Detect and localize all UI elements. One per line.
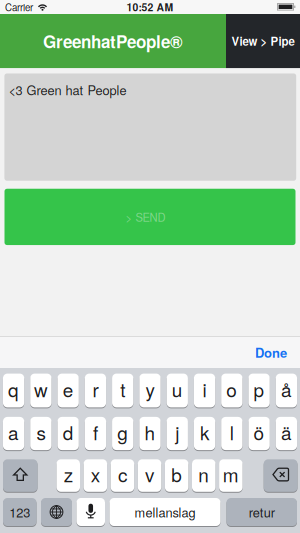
staticText: ö: [254, 418, 265, 445]
staticText: n: [198, 460, 209, 488]
staticText: e: [63, 375, 74, 402]
button[interactable]: c: [111, 459, 134, 492]
staticText: ä: [281, 418, 292, 445]
button[interactable]: <3 Green hat People: [4, 73, 296, 181]
button[interactable]: 123: [3, 498, 36, 526]
staticText: t: [120, 375, 125, 402]
staticText: j: [175, 418, 179, 445]
staticText: i: [203, 375, 207, 402]
button[interactable]: l: [221, 417, 242, 450]
staticText: h: [144, 418, 155, 445]
staticText: a: [8, 418, 19, 445]
staticText: q: [8, 375, 19, 402]
staticText: r: [92, 375, 98, 402]
button[interactable]: n: [192, 459, 215, 492]
staticText: v: [145, 460, 154, 488]
button[interactable]: o: [221, 374, 242, 407]
staticText: p: [254, 375, 265, 402]
staticText: View > Pipe: [231, 33, 294, 49]
button[interactable]: s: [30, 417, 51, 450]
staticText: l: [230, 418, 234, 445]
button[interactable]: y: [139, 374, 161, 407]
button[interactable]: j: [167, 417, 188, 450]
button[interactable]: retur: [226, 498, 297, 526]
staticText: d: [63, 418, 74, 445]
staticText: å: [281, 375, 292, 402]
staticText: x: [91, 460, 100, 488]
staticText: retur: [249, 503, 275, 521]
button[interactable]: [264, 459, 297, 492]
staticText: w: [34, 375, 48, 402]
button[interactable]: p: [248, 374, 270, 407]
button[interactable]: i: [194, 374, 215, 407]
button[interactable]: w: [30, 374, 51, 407]
staticText: <3 Green hat People: [8, 80, 126, 99]
button[interactable]: d: [57, 417, 79, 450]
button[interactable]: > SEND: [4, 189, 295, 245]
staticText: > SEND: [125, 209, 165, 225]
staticText: Done: [255, 343, 287, 362]
button[interactable]: Done: [255, 343, 287, 362]
staticText: o: [226, 375, 237, 402]
button[interactable]: u: [167, 374, 188, 407]
button[interactable]: m: [219, 459, 243, 492]
staticText: 123: [9, 503, 30, 521]
button[interactable]: [41, 498, 72, 526]
button[interactable]: b: [165, 459, 188, 492]
staticText: GreenhatPeople®: [43, 29, 183, 53]
staticText: f: [93, 418, 98, 445]
button[interactable]: å: [276, 374, 297, 407]
button[interactable]: ö: [248, 417, 270, 450]
staticText: g: [117, 418, 128, 445]
button[interactable]: f: [85, 417, 106, 450]
staticText: s: [36, 418, 45, 445]
button[interactable]: ä: [276, 417, 297, 450]
button[interactable]: k: [194, 417, 215, 450]
staticText: c: [118, 460, 127, 488]
staticText: z: [64, 460, 73, 488]
button[interactable]: g: [112, 417, 133, 450]
staticText: b: [171, 460, 182, 488]
button[interactable]: v: [138, 459, 161, 492]
staticText: m: [223, 460, 239, 488]
staticText: mellanslag: [134, 503, 195, 521]
button[interactable]: [3, 459, 37, 492]
button[interactable]: [76, 498, 105, 526]
button[interactable]: a: [3, 417, 24, 450]
button[interactable]: h: [139, 417, 161, 450]
button[interactable]: r: [85, 374, 106, 407]
button[interactable]: View > Pipe: [226, 14, 300, 68]
button[interactable]: z: [56, 459, 80, 492]
button[interactable]: x: [84, 459, 107, 492]
button[interactable]: mellanslag: [109, 498, 220, 526]
staticText: Carrier: [5, 0, 33, 14]
button[interactable]: q: [3, 374, 24, 407]
button[interactable]: t: [112, 374, 133, 407]
staticText: y: [145, 375, 154, 402]
button[interactable]: e: [57, 374, 79, 407]
staticText: u: [172, 375, 183, 402]
staticText: 10:52 AM: [126, 0, 173, 14]
staticText: k: [200, 418, 209, 445]
